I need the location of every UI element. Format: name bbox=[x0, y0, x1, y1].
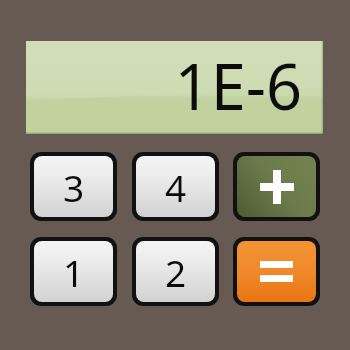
button[interactable]: 2 bbox=[132, 237, 219, 306]
button[interactable]: Plus bbox=[233, 152, 320, 221]
staticText: 1E-6 bbox=[174, 43, 302, 129]
button[interactable]: 4 bbox=[132, 152, 219, 221]
staticText: 1 bbox=[63, 247, 85, 297]
staticText: 4 bbox=[165, 162, 187, 212]
button[interactable]: 1 bbox=[30, 237, 117, 306]
button[interactable]: 3 bbox=[30, 152, 117, 221]
staticText: 3 bbox=[63, 162, 85, 212]
staticText: 2 bbox=[165, 247, 187, 297]
button[interactable]: Equals bbox=[233, 237, 320, 306]
